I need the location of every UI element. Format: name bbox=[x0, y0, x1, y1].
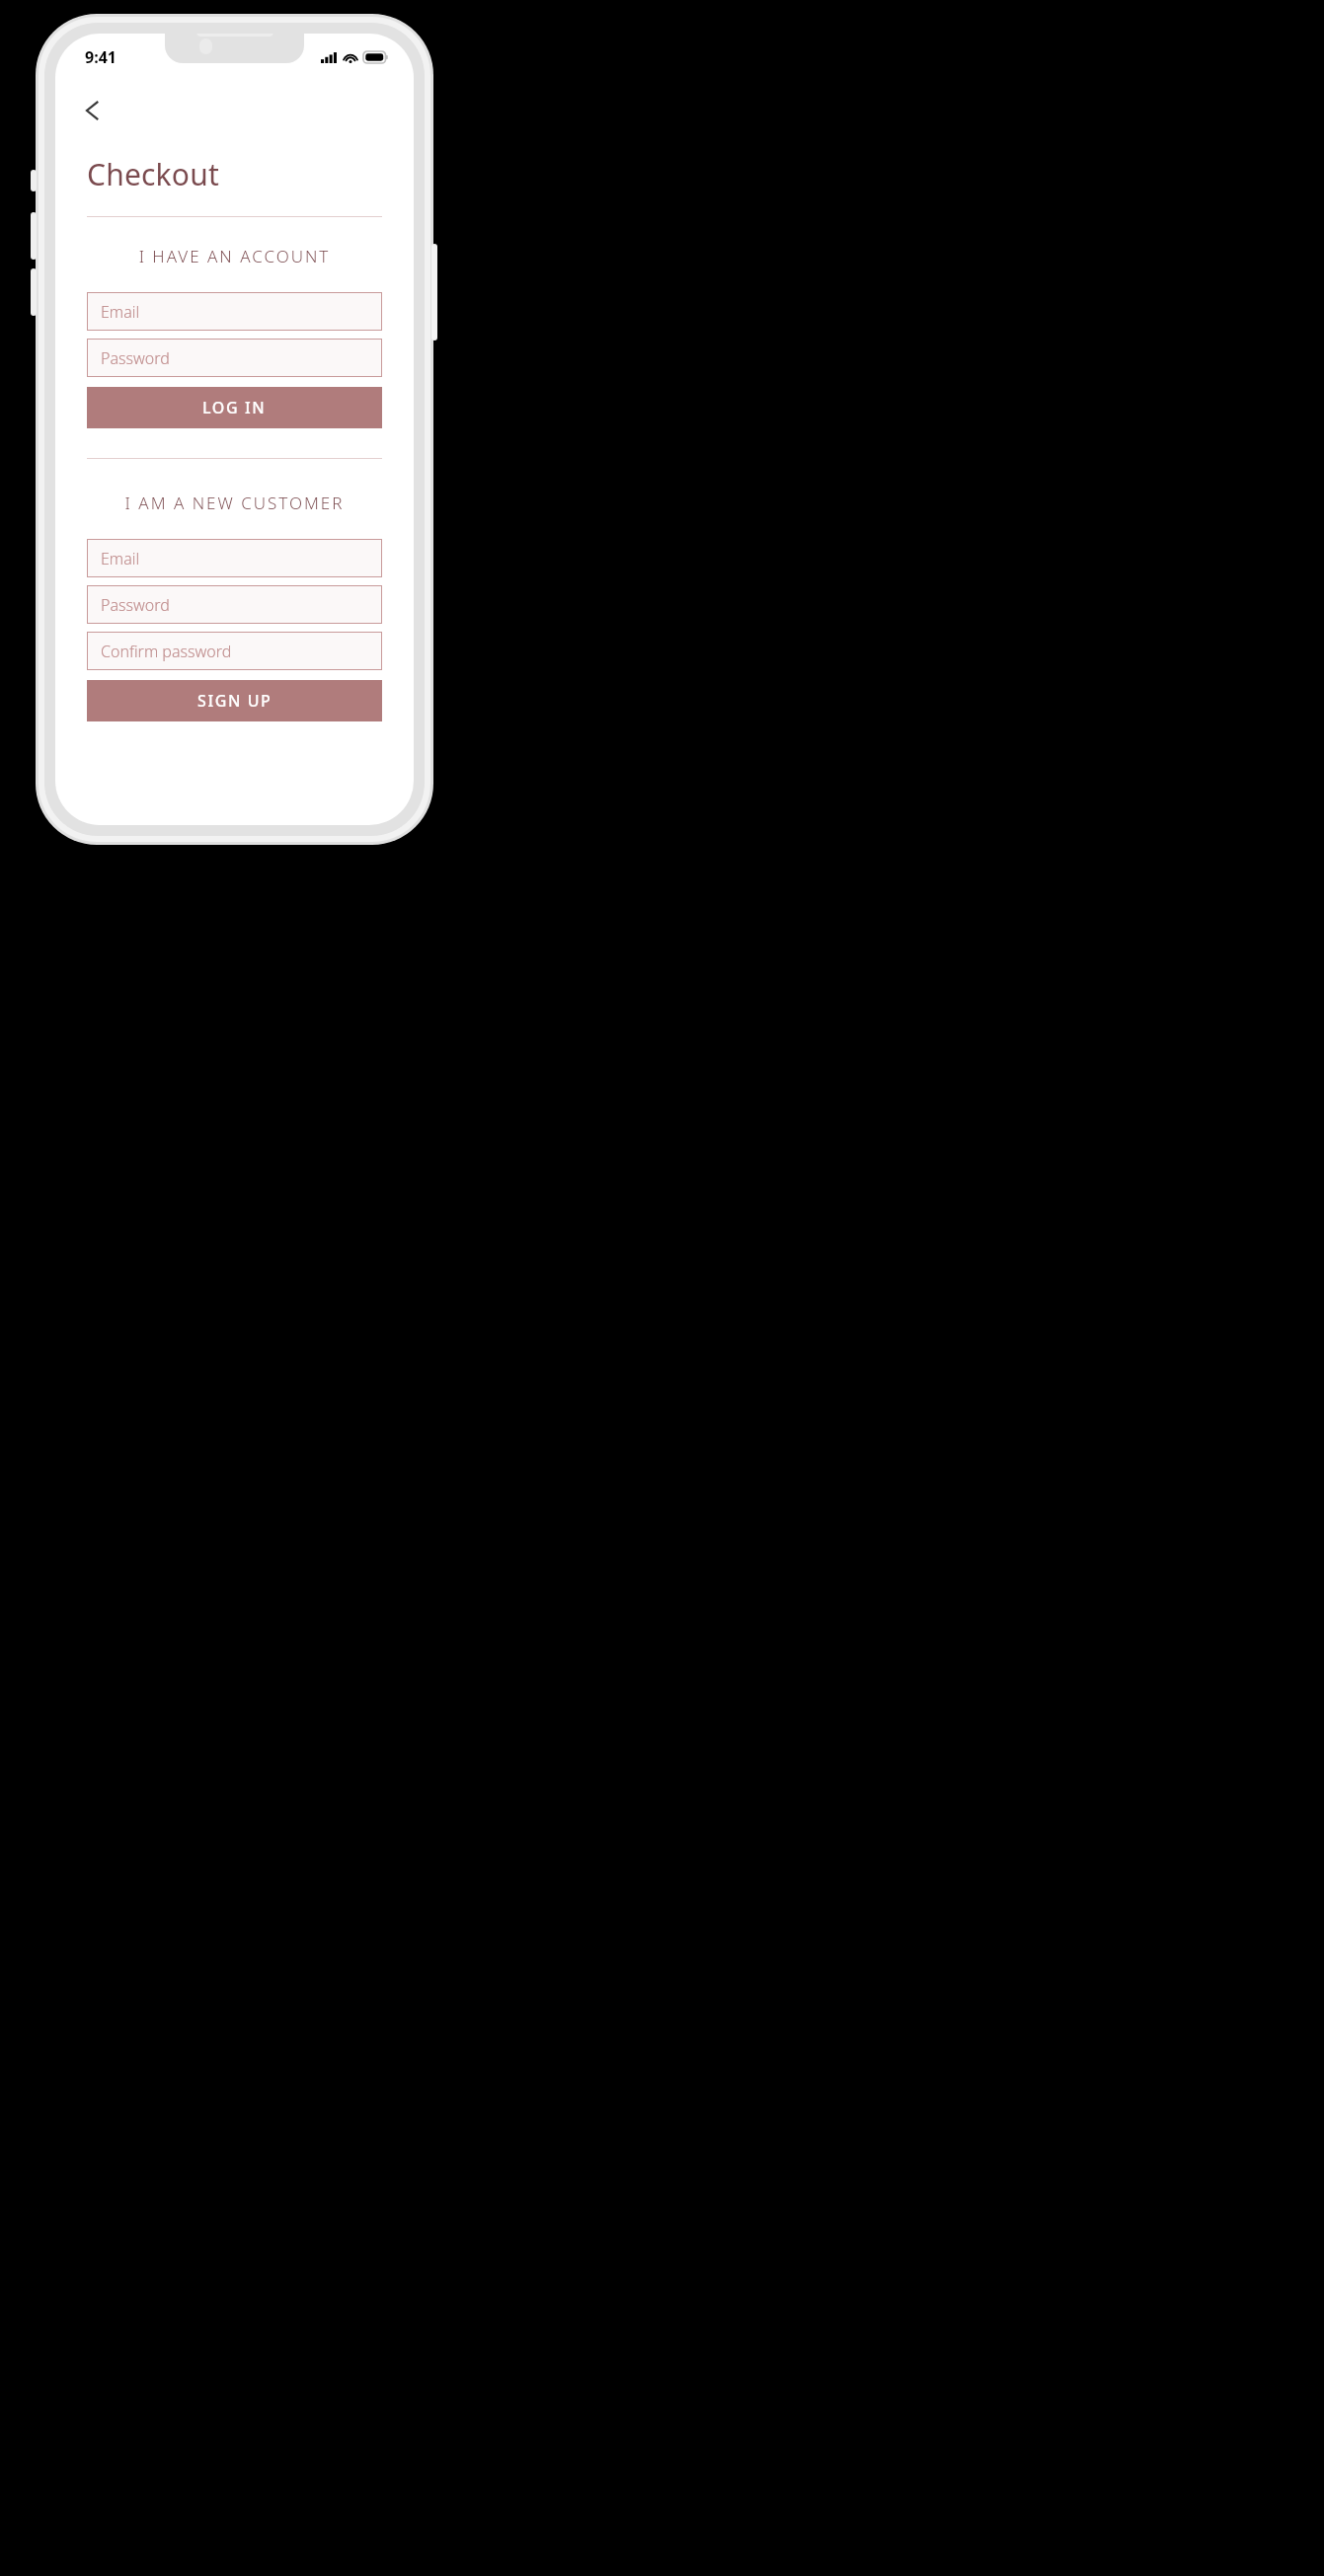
staticText: SIGN UP bbox=[197, 690, 273, 712]
button[interactable]: Back bbox=[69, 87, 117, 134]
staticText: Confirm password bbox=[101, 641, 232, 662]
button[interactable]: Password bbox=[87, 585, 382, 624]
button[interactable]: Confirm password bbox=[87, 632, 382, 670]
staticText: LOG IN bbox=[202, 397, 267, 418]
staticText: Checkout bbox=[87, 154, 219, 194]
button[interactable]: LOG IN bbox=[87, 387, 382, 428]
staticText: I AM A NEW CUSTOMER bbox=[55, 492, 414, 514]
button[interactable]: Email bbox=[87, 539, 382, 577]
staticText: Email bbox=[101, 301, 140, 323]
button[interactable]: Password bbox=[87, 339, 382, 377]
staticText: 9:41 bbox=[85, 46, 117, 68]
staticText: Password bbox=[101, 594, 170, 616]
button[interactable]: Email bbox=[87, 292, 382, 331]
button[interactable]: SIGN UP bbox=[87, 680, 382, 721]
staticText: Email bbox=[101, 548, 140, 569]
staticText: I HAVE AN ACCOUNT bbox=[55, 245, 414, 267]
staticText: Password bbox=[101, 347, 170, 369]
